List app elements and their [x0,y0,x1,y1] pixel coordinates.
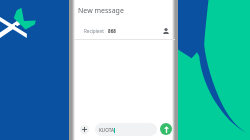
button[interactable]: KUOTA [95,123,157,136]
button[interactable]: Send [160,123,172,135]
staticText: New message [78,6,124,16]
button[interactable]: Add attachment [80,125,89,134]
staticText: Recipient [84,28,104,34]
staticText: 868 [108,28,116,34]
staticText: KUOTA [99,127,114,133]
button[interactable]: Choose contact [160,25,171,36]
